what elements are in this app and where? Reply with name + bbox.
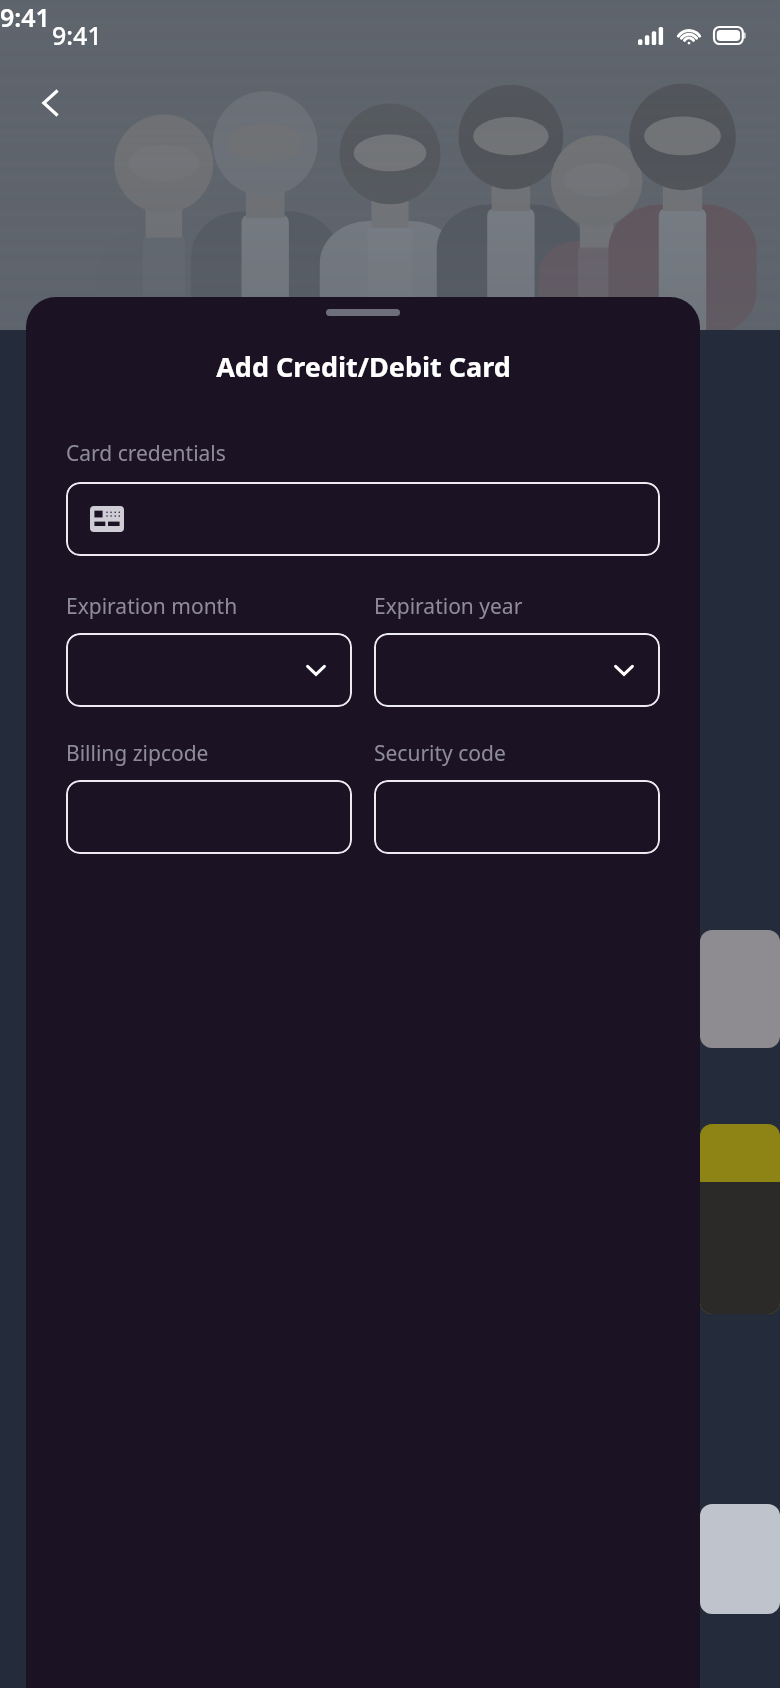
button[interactable] [374,780,660,854]
staticText: 9:41 [0,0,50,34]
button[interactable] [66,780,352,854]
staticText: Expiration year [374,592,523,621]
staticText: Add Credit/Debit Card [216,348,511,385]
staticText: Billing zipcode [66,739,209,768]
button[interactable]: Open dropdown [66,633,352,707]
button[interactable] [66,482,660,556]
staticText: 9:41 [52,18,102,52]
staticText: Card credentials [66,439,226,468]
staticText: Security code [374,739,506,768]
button[interactable]: Back [22,74,80,132]
staticText: Expiration month [66,592,238,621]
button[interactable]: Open dropdown [374,633,660,707]
